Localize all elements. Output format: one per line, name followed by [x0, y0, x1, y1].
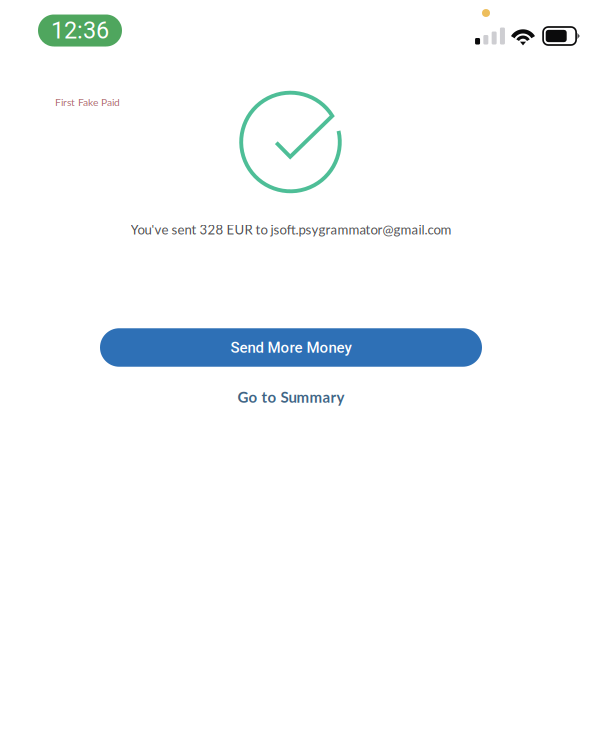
staticText: Go to Summary	[237, 388, 344, 406]
staticText: First Fake Paid	[55, 96, 120, 108]
button[interactable]: Return to active session, 12:36	[38, 14, 122, 46]
staticText: You've sent 328 EUR to jsoft.psygrammato…	[130, 222, 451, 237]
button[interactable]: Go to Summary	[206, 382, 376, 412]
staticText: 12:36	[51, 17, 109, 44]
staticText: Send More Money	[230, 339, 351, 356]
button[interactable]: Send More Money	[100, 328, 482, 367]
